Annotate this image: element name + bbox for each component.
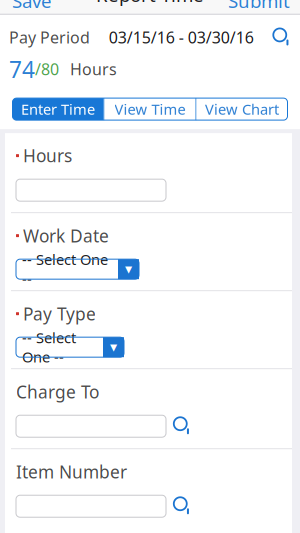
staticText: Enter Time (21, 99, 95, 119)
staticText: Work Date (23, 224, 109, 247)
staticText: Save (12, 0, 52, 13)
staticText: Pay Type (23, 302, 96, 325)
staticText: 74 (9, 54, 35, 84)
button[interactable]: View Chart (196, 98, 287, 120)
staticText: -- Select One -- (22, 250, 108, 289)
button[interactable]: Search charge to (173, 416, 192, 436)
staticText: /80 (35, 58, 59, 80)
button[interactable]: Save (0, 0, 64, 17)
staticText: View Chart (205, 99, 279, 119)
staticText: Hours (23, 144, 72, 167)
staticText: View Time (114, 99, 185, 119)
staticText: Submit (228, 0, 290, 13)
staticText: -- Select One -- (22, 328, 76, 367)
button[interactable]: Search pay period (272, 28, 300, 47)
staticText: 03/15/16 - 03/30/16 (109, 27, 254, 48)
button[interactable]: -- Select One -- (16, 337, 124, 357)
staticText: Item Number (16, 460, 127, 483)
staticText: Pay Period (9, 27, 90, 48)
button[interactable]: -- Select One -- (16, 259, 139, 279)
staticText: Report Time (96, 0, 204, 7)
staticText: Hours (70, 58, 117, 80)
staticText: ▼ (110, 342, 117, 352)
staticText: Charge To (16, 380, 99, 403)
button[interactable]: View Time (104, 98, 195, 120)
button[interactable]: Search item number (173, 496, 192, 516)
button[interactable]: Submit (218, 0, 300, 17)
button[interactable]: Enter Time (12, 98, 103, 120)
staticText: ▼ (125, 264, 132, 274)
